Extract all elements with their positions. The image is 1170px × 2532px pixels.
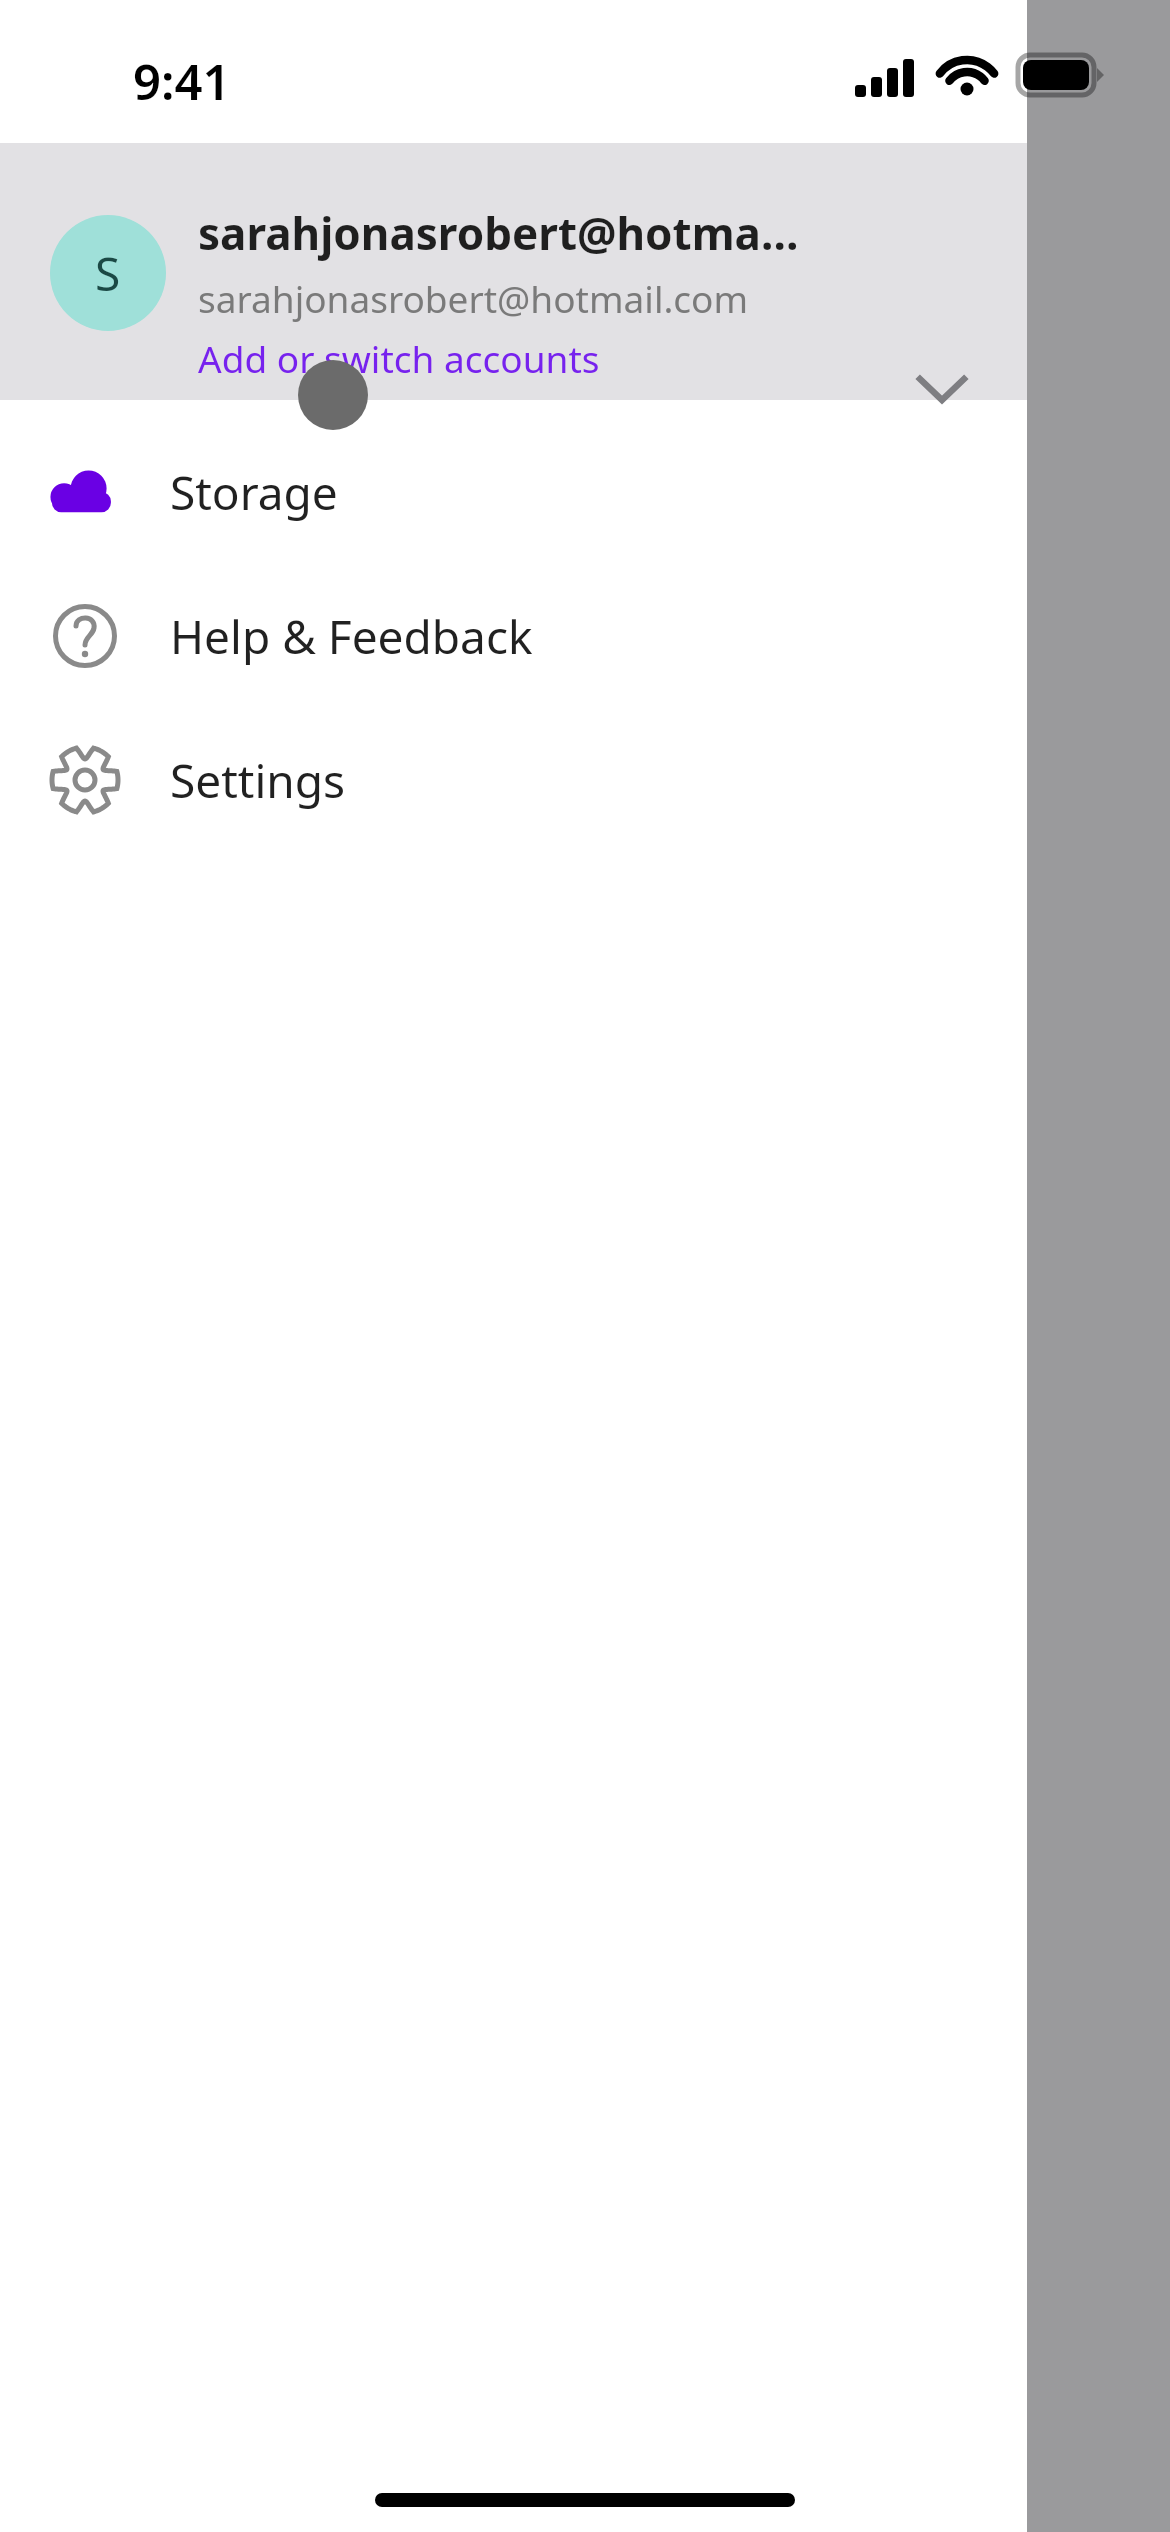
button[interactable]: Add or switch accounts bbox=[198, 333, 600, 383]
staticText: 9:41 bbox=[133, 48, 231, 115]
button[interactable]: Settings bbox=[0, 708, 1027, 852]
staticText: Collections bbox=[840, 2375, 1035, 2427]
staticText: S bbox=[95, 242, 121, 305]
staticText: sarahjonasrobert@hotma… bbox=[198, 203, 799, 263]
staticText: Settings bbox=[170, 749, 346, 812]
staticText: Favorites bbox=[845, 347, 1033, 407]
button[interactable]: S bbox=[0, 143, 1027, 400]
staticText: sarahjonasrobert@hotmail.com bbox=[198, 273, 749, 323]
staticText: Storage bbox=[170, 461, 338, 524]
button[interactable]: Help & Feedback bbox=[0, 564, 1027, 708]
staticText: Help & Feedback bbox=[170, 605, 533, 668]
button[interactable]: Expand account list bbox=[898, 344, 986, 432]
button[interactable]: Storage bbox=[0, 420, 1027, 564]
